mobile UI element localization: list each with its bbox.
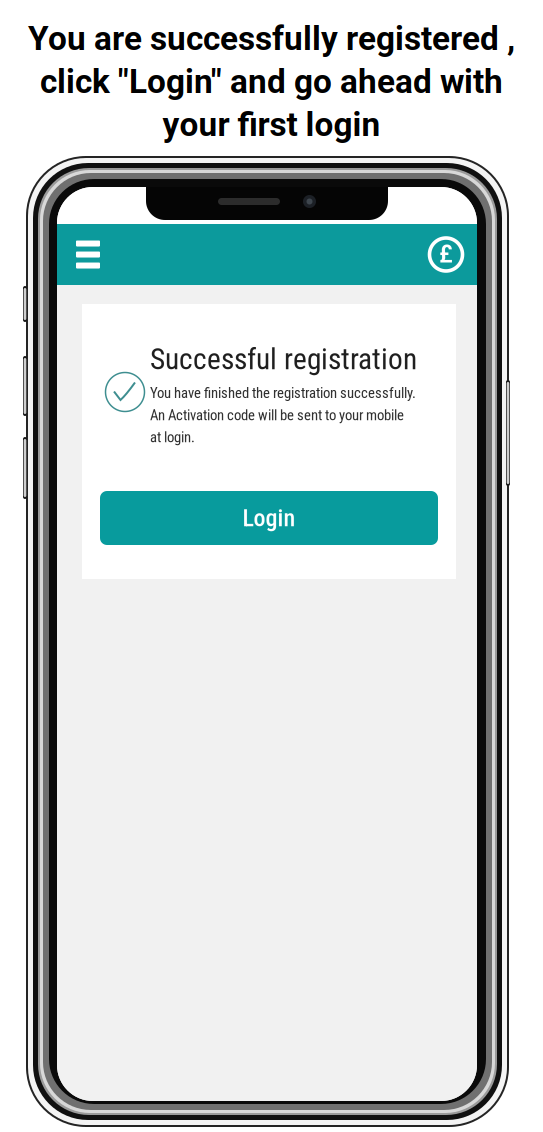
button[interactable]: Account balance	[415, 224, 477, 285]
staticText: Successful registration	[150, 342, 417, 376]
staticText: Login	[242, 504, 295, 532]
staticText: You have finished the registration succe…	[150, 384, 416, 402]
staticText: your first login	[162, 105, 380, 144]
staticText: click "Login" and go ahead with	[40, 62, 503, 101]
button[interactable]: Login	[100, 491, 438, 545]
button[interactable]: Menu	[57, 224, 119, 285]
staticText: An Activation code will be sent to your …	[150, 407, 404, 424]
staticText: at login.	[150, 429, 195, 446]
staticText: You are successfully registered ,	[28, 19, 515, 58]
staticText: £	[439, 238, 453, 269]
